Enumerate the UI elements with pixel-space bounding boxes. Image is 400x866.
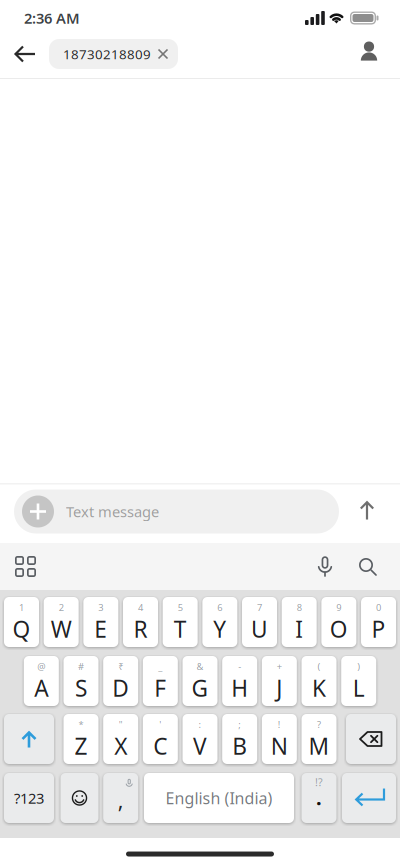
button[interactable]: Q — [4, 597, 39, 647]
staticText: 18730218809 — [63, 45, 151, 63]
staticText: English (India) — [165, 787, 272, 809]
staticText: " — [119, 718, 123, 731]
staticText: 9 — [336, 601, 341, 614]
staticText: W — [51, 614, 72, 644]
staticText: !? — [315, 775, 323, 789]
staticText: ; — [238, 718, 241, 731]
staticText: ₹ — [118, 660, 123, 673]
staticText: ! — [278, 718, 281, 731]
staticText: D — [112, 673, 129, 703]
staticText: 3 — [98, 601, 103, 614]
staticText: P — [371, 614, 385, 644]
button[interactable]: H — [222, 656, 257, 706]
button[interactable]: F — [143, 656, 178, 706]
button[interactable]: N — [262, 714, 297, 764]
staticText: K — [312, 673, 326, 703]
staticText: ?123 — [14, 788, 44, 808]
staticText: U — [251, 614, 268, 644]
button[interactable]: P — [361, 597, 396, 647]
staticText: Y — [213, 614, 226, 644]
button[interactable]: G — [182, 656, 217, 706]
staticText: 2 — [59, 601, 64, 614]
button[interactable]: Shift — [4, 714, 54, 764]
staticText: 6 — [217, 601, 222, 614]
staticText: 1 — [19, 601, 24, 614]
staticText: C — [153, 731, 167, 761]
staticText: Text message — [66, 502, 159, 521]
staticText: ) — [357, 660, 360, 673]
staticText: H — [231, 673, 248, 703]
staticText: O — [330, 614, 348, 644]
button[interactable]: L — [341, 656, 376, 706]
button[interactable]: Remove recipient — [49, 39, 178, 69]
staticText: B — [232, 731, 247, 761]
staticText: ? — [317, 718, 321, 731]
staticText: 4 — [138, 601, 143, 614]
button[interactable]: T — [163, 597, 198, 647]
button[interactable]: Z — [63, 714, 98, 764]
button[interactable]: R — [123, 597, 158, 647]
button[interactable]: Backspace — [346, 714, 396, 764]
button[interactable]: J — [262, 656, 297, 706]
staticText: V — [193, 731, 207, 761]
staticText: ' — [159, 718, 161, 731]
button[interactable]: Enter — [342, 773, 396, 823]
staticText: J — [276, 673, 282, 703]
staticText: 2:36 AM — [24, 8, 80, 28]
staticText: 5 — [178, 601, 183, 614]
staticText: I — [295, 614, 303, 644]
staticText: , — [118, 786, 124, 814]
button[interactable]: X — [103, 714, 138, 764]
staticText: N — [271, 731, 288, 761]
staticText: E — [94, 614, 107, 644]
staticText: Q — [12, 614, 30, 644]
button[interactable]: Y — [202, 597, 237, 647]
button[interactable]: Space — [144, 773, 294, 823]
button[interactable]: Symbols — [4, 773, 54, 823]
button[interactable]: Voice input — [307, 543, 343, 589]
staticText: : — [198, 718, 201, 731]
button[interactable]: U — [242, 597, 277, 647]
button[interactable]: E — [83, 597, 118, 647]
staticText: _ — [158, 660, 162, 673]
button[interactable]: B — [222, 714, 257, 764]
staticText: G — [191, 673, 208, 703]
staticText: @ — [37, 660, 45, 673]
staticText: ( — [317, 660, 320, 673]
button[interactable]: Emoji — [60, 773, 98, 823]
staticText: - — [238, 660, 241, 673]
button[interactable]: Comma — [103, 773, 138, 823]
staticText: A — [34, 673, 48, 703]
button[interactable]: D — [103, 656, 138, 706]
staticText: X — [114, 731, 127, 761]
button[interactable]: S — [63, 656, 98, 706]
button[interactable]: C — [143, 714, 178, 764]
button[interactable]: Text message — [14, 489, 339, 533]
button[interactable]: Period — [301, 773, 336, 823]
button[interactable]: W — [44, 597, 79, 647]
button[interactable]: V — [182, 714, 217, 764]
button[interactable]: O — [321, 597, 356, 647]
staticText: T — [174, 614, 187, 644]
staticText: Z — [74, 731, 87, 761]
button[interactable]: Contact — [348, 30, 400, 78]
staticText: & — [196, 660, 203, 673]
staticText: S — [75, 673, 87, 703]
button[interactable]: Back — [0, 30, 49, 78]
staticText: # — [78, 660, 84, 673]
staticText: 7 — [257, 601, 262, 614]
staticText: R — [133, 614, 147, 644]
button[interactable]: M — [301, 714, 336, 764]
staticText: L — [353, 673, 365, 703]
staticText: 0 — [376, 601, 381, 614]
staticText: * — [78, 718, 83, 731]
staticText: + — [277, 660, 282, 673]
staticText: M — [308, 731, 329, 761]
button[interactable]: K — [301, 656, 336, 706]
button[interactable]: Send — [350, 491, 384, 530]
button[interactable]: A — [24, 656, 59, 706]
button[interactable]: Keyboard options — [0, 543, 36, 590]
staticText: 8 — [297, 601, 302, 614]
button[interactable]: Search — [343, 544, 400, 589]
button[interactable]: I — [282, 597, 317, 647]
